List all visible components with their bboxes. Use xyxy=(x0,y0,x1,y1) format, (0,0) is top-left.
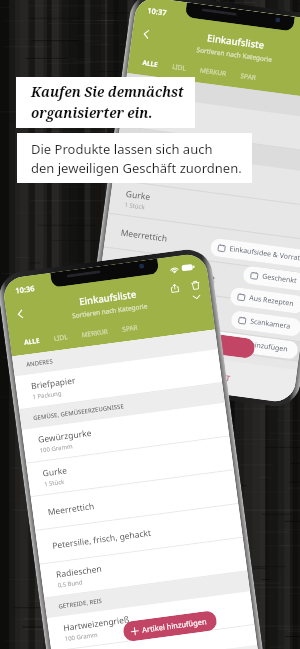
staticText: 100 Gramm xyxy=(128,167,163,179)
button[interactable]: Briefpapier xyxy=(120,93,300,153)
staticText: GEMÜSE, GEMÜSEERZEUGNISSE xyxy=(33,402,125,422)
staticText: Einkaufsliste xyxy=(78,288,138,308)
button[interactable]: Manuell hinzufügen xyxy=(202,329,299,360)
staticText: GETREIDE, REIS xyxy=(58,597,103,611)
staticText: MERKUR xyxy=(199,66,227,78)
staticText: Die Produkte lassen sich auch den jeweil… xyxy=(31,140,242,177)
staticText: ANDERES xyxy=(138,81,166,92)
button[interactable]: SPAR xyxy=(233,68,264,85)
button[interactable]: Meerrettich xyxy=(31,470,238,530)
button[interactable]: Artikel hinzufügen xyxy=(208,333,256,359)
staticText: Meerrettich xyxy=(120,227,168,245)
staticText: Geschenkt xyxy=(262,272,298,286)
staticText: 10:36 xyxy=(15,283,36,296)
button[interactable]: LIDL xyxy=(46,329,76,346)
staticText: Gurke xyxy=(125,188,152,203)
button[interactable]: Gurke xyxy=(108,180,300,240)
button[interactable]: Meerrettich xyxy=(104,214,300,274)
button[interactable]: Gewürzgurke xyxy=(113,146,300,206)
staticText: 100 Gramm xyxy=(39,442,74,455)
staticText: Meerrettich xyxy=(47,500,95,518)
staticText: 1 Packung xyxy=(136,114,166,125)
staticText: GETREIDE, REIS xyxy=(106,322,150,336)
staticText: SPAR xyxy=(122,323,139,334)
button[interactable]: BEREITS EINGEKAUFT xyxy=(54,645,262,649)
button[interactable]: MERKUR xyxy=(74,324,116,342)
staticText: Einkaufsliste xyxy=(206,31,266,52)
button[interactable]: Petersilie, frisch, gehackt xyxy=(35,504,243,564)
staticText: BEREITS EINGEKAUFT xyxy=(153,363,231,383)
button[interactable]: Zurück xyxy=(9,303,32,325)
staticText: ALLE xyxy=(24,336,41,347)
staticText: GEMÜSE, GEMÜSEERZEUGNISSE xyxy=(131,134,223,154)
staticText: Artikel hinzufügen xyxy=(141,616,207,635)
staticText: Briefpapier xyxy=(137,101,183,118)
staticText: LIDL xyxy=(53,332,68,343)
staticText: Petersilie, frisch, gehackt xyxy=(51,527,152,552)
button[interactable]: Einkaufsidee & Vorrat xyxy=(210,238,300,269)
staticText: Sortieren nach Kategorie xyxy=(71,301,148,320)
staticText: SPAR xyxy=(240,71,257,82)
staticText: Radieschen xyxy=(112,289,159,307)
button[interactable]: SPAR xyxy=(114,320,146,337)
staticText: ALLE xyxy=(142,58,159,69)
button[interactable]: Artikel hinzufügen xyxy=(122,610,218,642)
staticText: Radieschen xyxy=(55,563,103,581)
staticText: Kaufen Sie demnächst organisierter ein. xyxy=(31,83,184,122)
button[interactable]: MERKUR xyxy=(192,63,235,81)
button[interactable]: Gurke xyxy=(26,436,234,496)
button[interactable]: Aus Rezepten xyxy=(229,287,300,314)
button[interactable]: Haferflocken xyxy=(51,625,259,649)
staticText: 1 Stück xyxy=(44,478,65,488)
staticText: LIDL xyxy=(172,62,187,73)
staticText: 1 Packung xyxy=(32,389,63,401)
button[interactable]: LIDL xyxy=(164,59,194,76)
staticText: 1 Stück xyxy=(124,201,146,211)
staticText: 10:37 xyxy=(147,5,168,18)
staticText: Scankamera xyxy=(249,316,291,332)
staticText: MERKUR xyxy=(81,327,109,339)
button[interactable]: Teilen xyxy=(164,277,184,298)
button[interactable]: Petersilie, frisch, gehackt xyxy=(99,247,300,308)
button[interactable]: Gewürzgurke xyxy=(22,403,229,463)
staticText: Aus Rezepten xyxy=(249,293,294,309)
staticText: Gurke xyxy=(42,464,68,479)
button[interactable]: BEREITS EINGEKAUFT xyxy=(86,342,297,404)
button[interactable]: Radieschen xyxy=(40,538,247,597)
button[interactable]: ALLE xyxy=(135,55,166,72)
staticText: Gewürzgurke xyxy=(37,427,92,446)
button[interactable]: Briefpapier xyxy=(15,349,222,409)
staticText: 0,5 Bund xyxy=(110,302,137,313)
staticText: Gewürzgurke xyxy=(130,154,185,173)
staticText: Sortieren nach Kategorie xyxy=(196,45,273,64)
staticText: Manuell hinzufügen xyxy=(222,336,288,354)
staticText: 0,5 Bund xyxy=(57,578,84,590)
staticText: Hartweizengrieß xyxy=(62,613,130,634)
staticText: Petersilie, frisch, gehackt xyxy=(115,260,216,285)
button[interactable]: Radieschen xyxy=(95,281,300,341)
staticText: Briefpapier xyxy=(30,374,76,392)
button[interactable]: Geschenkt xyxy=(242,265,300,291)
button[interactable]: ALLE xyxy=(16,333,48,350)
staticText: 100 Gramm xyxy=(64,631,99,643)
button[interactable]: Hartweizengrieß xyxy=(47,591,254,649)
button[interactable]: Löschen xyxy=(185,275,205,295)
button[interactable]: Zurück xyxy=(135,23,157,45)
staticText: ANDERES xyxy=(26,357,53,369)
staticText: Einkaufsidee & Vorrat xyxy=(229,244,300,263)
staticText: Hartweizengrieß xyxy=(105,342,173,363)
staticText: 100 Gramm xyxy=(103,355,138,368)
button[interactable]: Hartweizengrieß xyxy=(88,335,298,395)
button[interactable]: Scankamera xyxy=(230,310,300,337)
button[interactable]: Mehr anzeigen xyxy=(190,290,203,303)
